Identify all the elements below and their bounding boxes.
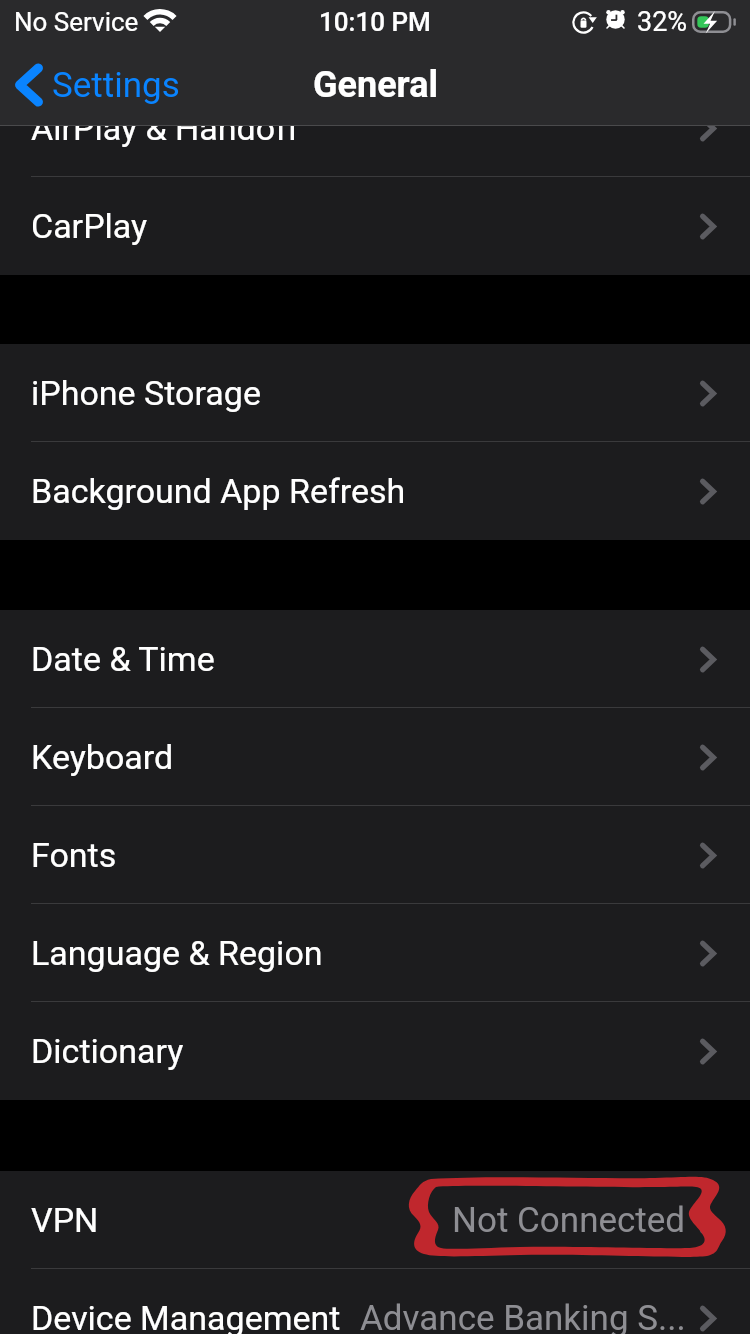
staticText: Date & Time xyxy=(31,639,215,679)
staticText: Fonts xyxy=(31,835,117,875)
staticText: No Service xyxy=(14,7,139,37)
button[interactable]: Fonts xyxy=(0,806,750,904)
staticText: Settings xyxy=(52,65,180,106)
other: Rotation lock xyxy=(572,11,595,34)
button[interactable]: Back xyxy=(0,44,190,126)
staticText: VPN xyxy=(31,1200,99,1240)
button[interactable]: Keyboard xyxy=(0,708,750,806)
other: Alarm set xyxy=(605,9,626,30)
staticText: Advance Banking S... xyxy=(360,1298,686,1334)
button[interactable]: Dictionary xyxy=(0,1002,750,1100)
staticText: CarPlay xyxy=(31,206,148,246)
other: Back xyxy=(16,63,42,107)
button[interactable]: Device Management xyxy=(0,1269,750,1334)
staticText: Dictionary xyxy=(31,1031,184,1071)
button[interactable]: Background App Refresh xyxy=(0,442,750,540)
staticText: AirPlay & Handoff xyxy=(31,108,299,148)
button[interactable]: Date & Time xyxy=(0,610,750,708)
staticText: Not Connected xyxy=(452,1200,686,1241)
staticText: 10:10 PM xyxy=(319,7,431,37)
button[interactable]: VPN xyxy=(0,1171,750,1269)
staticText: Keyboard xyxy=(31,737,174,777)
other: Wi-Fi xyxy=(144,9,176,32)
staticText: 32% xyxy=(637,6,688,38)
other: Battery 32 percent charging xyxy=(692,11,737,33)
button[interactable]: AirPlay & Handoff xyxy=(0,79,750,177)
staticText: Background App Refresh xyxy=(31,471,406,511)
staticText: Device Management xyxy=(31,1298,341,1334)
button[interactable]: CarPlay xyxy=(0,177,750,275)
button[interactable]: Language & Region xyxy=(0,904,750,1002)
button[interactable]: iPhone Storage xyxy=(0,344,750,442)
staticText: iPhone Storage xyxy=(31,373,261,413)
staticText: General xyxy=(313,64,438,106)
staticText: Language & Region xyxy=(31,933,323,973)
